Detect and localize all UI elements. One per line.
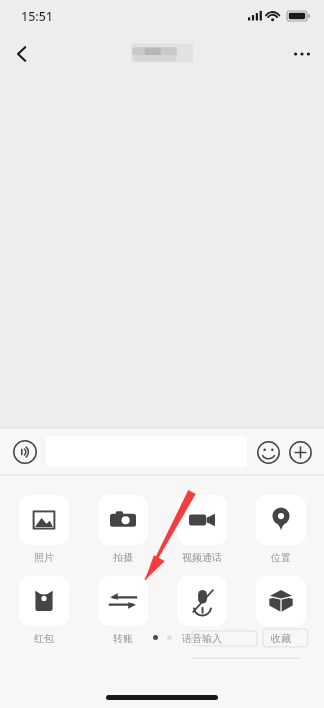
staticText: 照片: [34, 551, 54, 564]
button[interactable]: Back: [0, 32, 44, 76]
staticText: 位置: [271, 551, 291, 564]
button[interactable]: More options: [280, 32, 324, 76]
button[interactable]: Emoji: [252, 436, 284, 468]
button[interactable]: 收藏: [249, 576, 312, 645]
button[interactable]: Voice message: [8, 435, 42, 469]
button[interactable]: 红包: [12, 576, 75, 645]
staticText: 收藏: [271, 632, 291, 645]
staticText: 15:51: [21, 8, 54, 25]
button[interactable]: 视频通话: [170, 495, 233, 564]
button[interactable]: 拍摄: [91, 495, 154, 564]
staticText: 红包: [34, 632, 54, 645]
staticText: 语音输入: [182, 632, 222, 645]
staticText: 转账: [113, 632, 133, 645]
button[interactable]: More actions: [284, 436, 316, 468]
button[interactable]: 位置: [249, 495, 312, 564]
staticText: 视频通话: [182, 551, 222, 564]
button[interactable]: 照片: [12, 495, 75, 564]
staticText: 拍摄: [113, 551, 133, 564]
button[interactable]: 语音输入: [170, 576, 233, 645]
button[interactable]: 转账: [91, 576, 154, 645]
